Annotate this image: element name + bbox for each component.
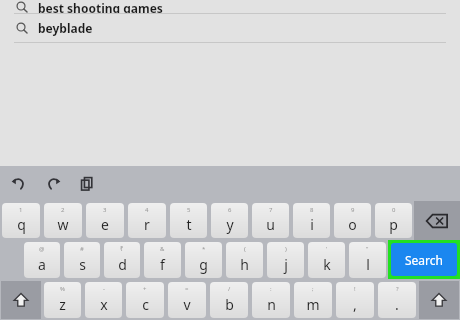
button[interactable]: Search [391,243,457,276]
button[interactable]: best shooting games [0,0,460,13]
button[interactable]: 1 [2,203,40,238]
staticText: 7 [269,206,273,214]
staticText: 3 [103,206,107,214]
button[interactable]: 8 [293,203,330,238]
staticText: @ [39,245,45,253]
staticText: 0 [392,206,396,214]
staticText: 9 [351,206,355,214]
button[interactable]: ? [378,282,416,318]
staticText: t [186,215,192,234]
button[interactable]: Shift [1,281,41,319]
staticText: . [395,295,399,314]
staticText: Search [405,252,443,268]
staticText: r [144,215,150,234]
staticText: u [266,215,275,234]
staticText: 2 [61,206,65,214]
staticText: p [389,215,398,234]
staticText: best shooting games [38,0,163,13]
button[interactable]: # [64,242,100,278]
staticText: w [57,215,69,234]
staticText: / [228,285,231,293]
staticText: ! [354,285,356,293]
button[interactable]: / [210,282,248,318]
staticText: 1 [19,206,23,214]
staticText: # [80,245,84,253]
button[interactable]: " [349,242,386,278]
button[interactable]: * [185,242,222,278]
staticText: ? [396,285,399,293]
staticText: y [226,215,234,234]
staticText: c [142,295,149,314]
staticText: ( [244,245,246,253]
button[interactable]: 6 [211,203,248,238]
button[interactable]: 3 [86,203,124,238]
staticText: % [60,285,65,293]
staticText: = [185,285,189,293]
button[interactable]: : [252,282,290,318]
staticText: f [160,255,165,274]
button[interactable]: 4 [128,203,166,238]
staticText: 4 [145,206,149,214]
button[interactable]: ; [294,282,332,318]
staticText: b [225,295,234,314]
staticText: ₹ [120,245,124,253]
staticText: : [270,285,272,293]
staticText: o [348,215,357,234]
staticText: d [118,255,127,274]
button[interactable]: % [44,282,81,318]
staticText: ' [326,245,328,253]
staticText: 6 [228,206,232,214]
staticText: e [101,215,109,234]
button[interactable]: 0 [375,203,412,238]
staticText: + [143,285,147,293]
button[interactable]: beyblade [0,14,460,42]
staticText: s [79,255,86,274]
staticText: k [323,255,331,274]
staticText: ) [285,245,287,253]
staticText: & [160,245,165,253]
button[interactable]: ₹ [104,242,140,278]
staticText: x [100,295,108,314]
button[interactable]: ( [226,242,263,278]
staticText: - [103,285,105,293]
button[interactable]: Undo [8,173,30,195]
button[interactable]: 7 [252,203,289,238]
button[interactable]: Clipboard [76,173,98,195]
staticText: j [284,255,288,274]
staticText: n [267,295,276,314]
button[interactable]: - [85,282,122,318]
staticText: g [199,255,208,274]
staticText: beyblade [38,20,93,36]
button[interactable]: + [126,282,164,318]
button[interactable]: Shift [419,281,459,319]
button[interactable]: & [144,242,181,278]
staticText: " [366,245,369,253]
staticText: a [38,255,46,274]
button[interactable]: 5 [170,203,207,238]
button[interactable]: @ [24,242,60,278]
button[interactable]: Redo [42,173,64,195]
button[interactable]: = [168,282,206,318]
staticText: z [59,295,66,314]
button[interactable]: 2 [44,203,82,238]
staticText: i [310,215,314,234]
staticText: q [17,215,26,234]
button[interactable]: ' [308,242,345,278]
button[interactable]: ! [336,282,374,318]
staticText: * [202,245,206,253]
button[interactable]: 9 [334,203,371,238]
staticText: 8 [310,206,314,214]
staticText: l [366,255,370,274]
staticText: m [306,295,320,314]
button[interactable]: Backspace [414,201,460,240]
staticText: v [183,295,191,314]
button[interactable]: ) [267,242,304,278]
staticText: 5 [187,206,191,214]
staticText: h [240,255,249,274]
staticText: , [353,295,357,314]
staticText: ; [312,285,314,293]
